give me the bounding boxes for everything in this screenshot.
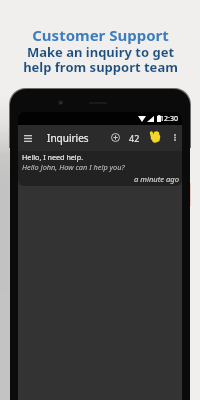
staticText: a minute ago <box>18 174 179 184</box>
staticText: 12:30 <box>160 114 178 124</box>
button[interactable]: Inquiries <box>47 125 89 151</box>
button[interactable]: Menu <box>21 131 35 145</box>
staticText: Hello, I need help. <box>22 152 84 162</box>
staticText: Customer Support <box>32 25 169 45</box>
button[interactable]: New inquiry <box>108 130 122 144</box>
staticText: Hello John, How can I help you? <box>22 162 125 172</box>
staticText: Make an inquiry to get help from support… <box>23 43 178 76</box>
staticText: Inquiries <box>47 131 89 145</box>
button[interactable]: 42 <box>129 125 140 151</box>
staticText: 42 <box>129 132 140 144</box>
button[interactable]: More options <box>168 131 181 144</box>
button[interactable]: Rewards <box>148 129 162 143</box>
